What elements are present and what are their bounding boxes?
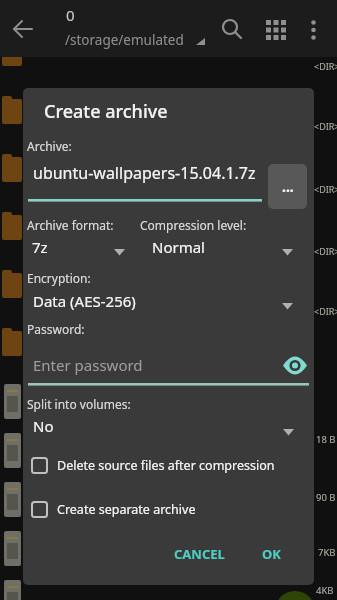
button[interactable]: Create separate archive [27,497,307,523]
button[interactable]: 7z [27,234,132,262]
staticText: /storage/emulated [65,31,184,49]
staticText: 7z [32,237,48,257]
button[interactable] [0,0,56,57]
staticText: Data (AES-256) [33,291,136,311]
staticText: 18 B [316,433,336,446]
button[interactable] [300,10,334,50]
staticText: ubuntu-wallpapers-15.04.1.7z [33,162,256,184]
button[interactable]: Normal [148,234,298,262]
staticText: Split into volumes: [27,396,131,412]
staticText: Delete source files after compression [57,457,275,474]
staticText: <DIR> [314,120,337,132]
staticText: Archive: [27,138,72,154]
staticText: Password: [27,321,85,337]
staticText: <DIR> [314,245,337,257]
button[interactable]: No [27,413,299,441]
button[interactable] [275,591,315,600]
staticText: Archive format: [27,217,114,233]
staticText: OK [262,545,281,563]
staticText: 0 [66,5,75,25]
staticText: 90 B [316,491,336,504]
staticText: <DIR> [314,305,337,317]
button[interactable]: CANCEL [162,536,236,572]
button[interactable]: Delete source files after compression [27,453,307,479]
staticText: Compression level: [140,217,247,233]
staticText: Create archive [44,99,168,124]
staticText: Normal [152,237,205,257]
staticText: CANCEL [174,545,225,563]
button[interactable] [213,10,251,50]
button[interactable]: OK [248,536,294,572]
staticText: 7KB [318,546,336,559]
staticText: No [33,416,54,436]
staticText: Encryption: [27,270,91,286]
staticText: Enter password [33,355,143,375]
staticText: <DIR> [314,183,337,195]
button[interactable]: Data (AES-256) [27,288,299,316]
button[interactable] [258,10,296,50]
staticText: <DIR> [314,60,337,72]
button[interactable]: ... [268,164,307,209]
button[interactable] [278,350,312,380]
staticText: Create separate archive [57,501,196,518]
staticText: ... [282,177,294,196]
staticText: 4KB [316,584,334,597]
